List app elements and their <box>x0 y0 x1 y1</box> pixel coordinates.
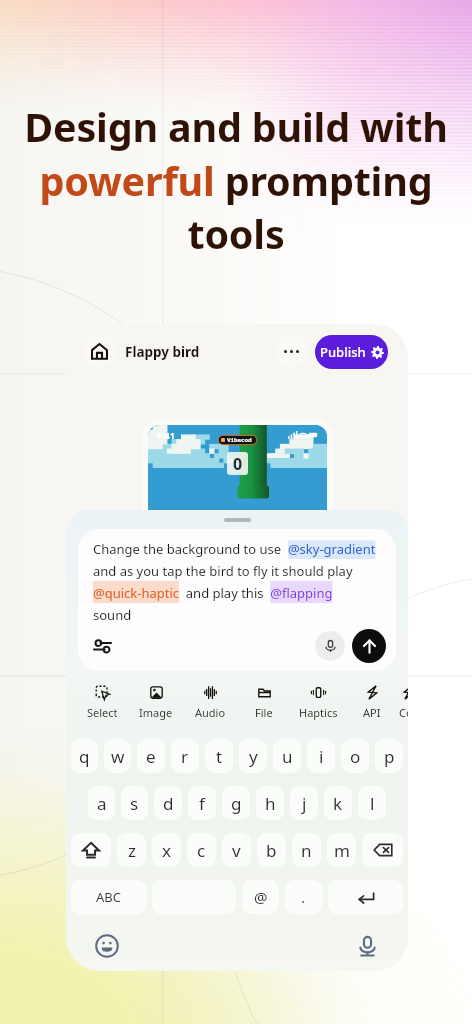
button[interactable]: a <box>88 786 115 820</box>
button[interactable]: v <box>222 833 251 867</box>
button[interactable]: Publish <box>315 335 388 369</box>
staticText: y <box>249 745 258 768</box>
staticText: u <box>282 745 293 768</box>
staticText: j <box>302 792 307 815</box>
button[interactable]: Code <box>399 683 408 725</box>
button[interactable]: Emoji <box>93 932 121 960</box>
staticText: a <box>97 792 107 815</box>
button[interactable]: More options <box>275 335 308 368</box>
button[interactable]: p <box>375 739 403 773</box>
button[interactable]: l <box>358 786 386 820</box>
staticText: . <box>301 887 306 907</box>
staticText: d <box>163 792 174 815</box>
staticText: Design and build with powerful prompting… <box>6 100 466 260</box>
button[interactable]: m <box>327 833 356 867</box>
button[interactable]: o <box>341 739 369 773</box>
button[interactable]: j <box>290 786 318 820</box>
button[interactable]: t <box>205 739 233 773</box>
staticText: @ <box>254 887 268 907</box>
staticText: o <box>350 745 361 768</box>
staticText: v <box>232 839 241 862</box>
staticText: l <box>370 792 375 815</box>
staticText: g <box>231 792 242 815</box>
button[interactable]: x <box>152 833 181 867</box>
button[interactable]: h <box>256 786 284 820</box>
staticText: f <box>199 792 205 815</box>
button[interactable]: r <box>171 739 199 773</box>
staticText: 0 <box>233 453 243 475</box>
staticText: n <box>301 839 312 862</box>
button[interactable]: Return <box>328 880 403 914</box>
staticText: x <box>162 839 171 862</box>
button[interactable]: Microphone <box>353 932 381 960</box>
staticText: r <box>181 745 189 768</box>
staticText: ABC <box>96 888 121 906</box>
staticText: z <box>128 839 136 862</box>
button[interactable]: Shift <box>71 833 111 867</box>
staticText: p <box>384 745 395 768</box>
button[interactable]: f <box>188 786 216 820</box>
staticText: Publish <box>320 343 366 361</box>
staticText: Select <box>87 705 118 720</box>
button[interactable]: Haptics <box>291 683 345 725</box>
button[interactable]: g <box>222 786 250 820</box>
staticText: Code <box>399 705 408 720</box>
button[interactable]: Prompt settings <box>88 632 116 660</box>
staticText: Image <box>139 705 173 720</box>
button[interactable]: Voice input <box>315 631 345 661</box>
staticText: API <box>363 705 381 720</box>
staticText: Flappy bird <box>125 343 200 361</box>
button[interactable]: s <box>121 786 148 820</box>
staticText: e <box>146 745 156 768</box>
button[interactable]: u <box>273 739 301 773</box>
staticText: Haptics <box>299 705 338 720</box>
button[interactable]: w <box>104 739 131 773</box>
button[interactable]: Select <box>75 683 129 725</box>
staticText: 9:41 <box>157 429 175 441</box>
staticText: File <box>255 705 273 720</box>
button[interactable]: Send <box>352 629 386 663</box>
staticText: Change the background to use @sky-gradie… <box>93 540 376 624</box>
staticText: h <box>265 792 276 815</box>
button[interactable]: File <box>237 683 291 725</box>
button[interactable]: d <box>154 786 182 820</box>
button[interactable]: i <box>307 739 335 773</box>
staticText: t <box>216 745 223 768</box>
button[interactable]: @ <box>242 880 279 914</box>
button[interactable]: e <box>137 739 165 773</box>
staticText: s <box>130 792 139 815</box>
staticText: m <box>334 839 350 862</box>
button[interactable]: Home <box>83 335 116 368</box>
button[interactable]: Audio <box>183 683 237 725</box>
button[interactable]: y <box>239 739 267 773</box>
button[interactable]: Backspace <box>362 833 403 867</box>
button[interactable]: k <box>324 786 352 820</box>
staticText: q <box>79 745 90 768</box>
staticText: k <box>333 792 343 815</box>
button[interactable]: b <box>257 833 286 867</box>
staticText: Audio <box>195 705 226 720</box>
staticText: b <box>266 839 277 862</box>
button[interactable]: ABC <box>71 880 146 914</box>
button[interactable]: Image <box>129 683 183 725</box>
staticText: c <box>197 839 206 862</box>
button[interactable]: q <box>71 739 98 773</box>
staticText: w <box>111 745 125 768</box>
button[interactable]: c <box>187 833 216 867</box>
button[interactable]: . <box>285 880 322 914</box>
staticText: Vibecode <box>227 436 254 444</box>
button[interactable]: z <box>117 833 146 867</box>
button[interactable]: n <box>292 833 321 867</box>
staticText: i <box>319 745 324 768</box>
button[interactable]: API <box>345 683 399 725</box>
